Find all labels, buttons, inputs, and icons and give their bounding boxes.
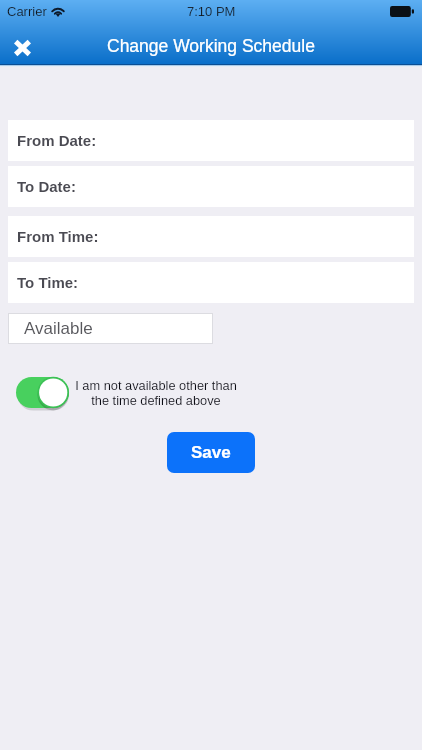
- button[interactable]: Availability toggle: [16, 377, 69, 408]
- staticText: To Time:: [17, 274, 79, 291]
- staticText: Save: [191, 443, 231, 462]
- staticText: From Date:: [17, 132, 97, 149]
- button[interactable]: To Date:: [8, 166, 414, 207]
- staticText: Available: [24, 319, 93, 338]
- button[interactable]: Close: [0, 22, 44, 65]
- staticText: 7:10 PM: [187, 4, 236, 19]
- button[interactable]: Save: [167, 432, 255, 473]
- staticText: Carrier: [7, 4, 47, 19]
- staticText: To Date:: [17, 178, 76, 195]
- button[interactable]: Available: [8, 313, 213, 344]
- button[interactable]: To Time:: [8, 262, 414, 303]
- button[interactable]: From Time:: [8, 216, 414, 257]
- staticText: I am not available other than the time d…: [75, 378, 237, 408]
- staticText: Change Working Schedule: [107, 36, 315, 56]
- button[interactable]: From Date:: [8, 120, 414, 161]
- staticText: From Time:: [17, 228, 99, 245]
